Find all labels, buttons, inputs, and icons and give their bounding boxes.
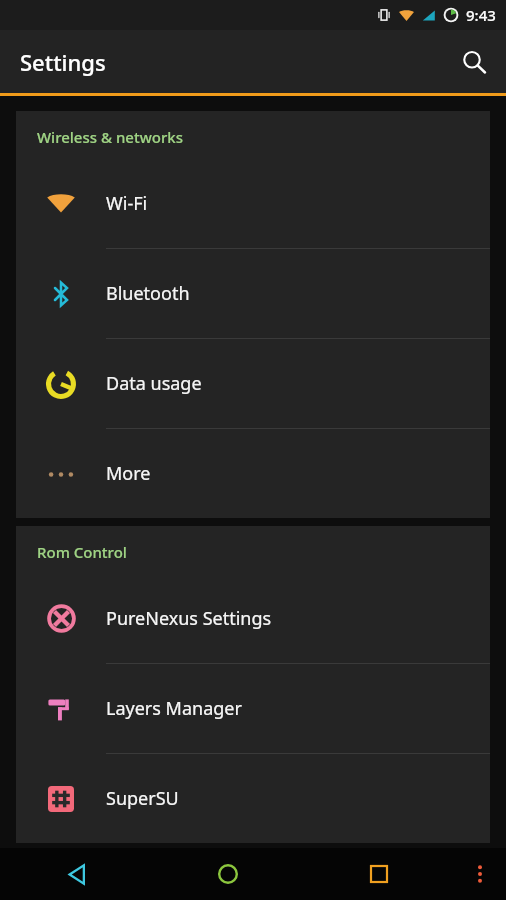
button[interactable]: Bluetooth xyxy=(16,249,490,339)
staticText: Data usage xyxy=(106,371,202,396)
button[interactable]: Layers Manager xyxy=(16,664,490,754)
staticText: PureNexus Settings xyxy=(106,606,272,631)
staticText: Rom Control xyxy=(37,542,127,562)
staticText: Layers Manager xyxy=(106,696,242,721)
button[interactable]: Data usage xyxy=(16,339,490,429)
staticText: Wireless & networks xyxy=(37,127,183,147)
button[interactable]: Recent apps xyxy=(303,848,454,900)
button[interactable]: Search xyxy=(450,38,498,86)
staticText: Bluetooth xyxy=(106,281,190,306)
staticText: More xyxy=(106,461,151,486)
button[interactable]: More options xyxy=(454,848,506,900)
staticText: Settings xyxy=(20,47,106,77)
staticText: 9:43 xyxy=(466,5,496,25)
staticText: SuperSU xyxy=(106,786,179,811)
button[interactable]: PureNexus Settings xyxy=(16,574,490,664)
staticText: Wi-Fi xyxy=(106,191,148,216)
button[interactable]: Back xyxy=(0,848,152,900)
button[interactable]: More xyxy=(16,429,490,518)
button[interactable]: Wi-Fi xyxy=(16,159,490,249)
button[interactable]: Home xyxy=(152,848,303,900)
button[interactable]: SuperSU xyxy=(16,754,490,843)
